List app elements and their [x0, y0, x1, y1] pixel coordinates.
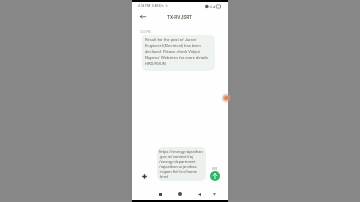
- button[interactable]: Result for the post of Junior Engineer-I…: [142, 35, 215, 71]
- staticText: TX-RVJSRT: [167, 14, 193, 20]
- button[interactable]: Home: [175, 189, 185, 199]
- button[interactable]: https://energy.rajasthan .gov.in/content…: [157, 147, 206, 181]
- button[interactable]: Add attachment: [139, 171, 150, 182]
- staticText: https://energy.rajasthan .gov.in/content…: [159, 149, 203, 179]
- button[interactable]: Recents: [155, 189, 165, 199]
- staticText: 4:23 PM: [140, 30, 151, 33]
- staticText: Result for the post of Junior Engineer-I…: [145, 37, 210, 66]
- button[interactable]: Hide keyboard: [209, 189, 219, 199]
- staticText: SMS: [212, 168, 218, 171]
- button[interactable]: Back: [194, 189, 204, 199]
- button[interactable]: Floating shortcut: [220, 93, 228, 103]
- staticText: 4:34 PM 0.4KB/s ↻: [138, 4, 168, 8]
- button[interactable]: Back: [138, 12, 148, 22]
- button[interactable]: Send: [210, 171, 220, 181]
